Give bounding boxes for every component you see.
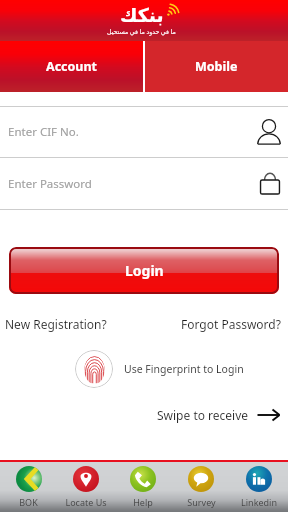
button[interactable]: Account bbox=[0, 41, 143, 92]
staticText: Help bbox=[133, 496, 153, 508]
staticText: بنكك bbox=[120, 4, 164, 26]
staticText: Forgot Password? bbox=[181, 316, 281, 332]
staticText: BOK bbox=[19, 496, 38, 508]
button[interactable]: Locate Us bbox=[57, 462, 114, 512]
staticText: Account bbox=[46, 58, 98, 75]
button[interactable]: New Registration? bbox=[0, 314, 113, 335]
staticText: ما في حدود ما في مستحيل bbox=[107, 27, 176, 35]
staticText: Enter Password bbox=[8, 176, 92, 192]
button[interactable]: Enter CIF No. bbox=[0, 107, 288, 157]
staticText: Swipe to receive bbox=[157, 407, 249, 423]
button[interactable]: BOK bbox=[0, 462, 57, 512]
staticText: Mobile bbox=[195, 58, 238, 75]
button[interactable]: Help bbox=[114, 462, 172, 512]
button[interactable]: Survey bbox=[172, 462, 230, 512]
button[interactable]: Linkedin bbox=[230, 462, 288, 512]
button[interactable]: Use Fingerprint to Login bbox=[75, 350, 113, 388]
staticText: Login bbox=[125, 261, 164, 280]
staticText: New Registration? bbox=[5, 316, 107, 332]
button[interactable]: Swipe to receive bbox=[147, 404, 288, 427]
staticText: Linkedin bbox=[241, 496, 277, 508]
staticText: Survey bbox=[187, 496, 216, 508]
button[interactable]: Mobile bbox=[145, 41, 288, 92]
staticText: Locate Us bbox=[65, 496, 107, 508]
button[interactable]: Enter Password bbox=[0, 158, 288, 209]
button[interactable]: Login bbox=[9, 247, 279, 294]
staticText: Enter CIF No. bbox=[8, 124, 79, 140]
button[interactable]: Forgot Password? bbox=[175, 314, 288, 335]
staticText: Use Fingerprint to Login bbox=[124, 362, 244, 376]
